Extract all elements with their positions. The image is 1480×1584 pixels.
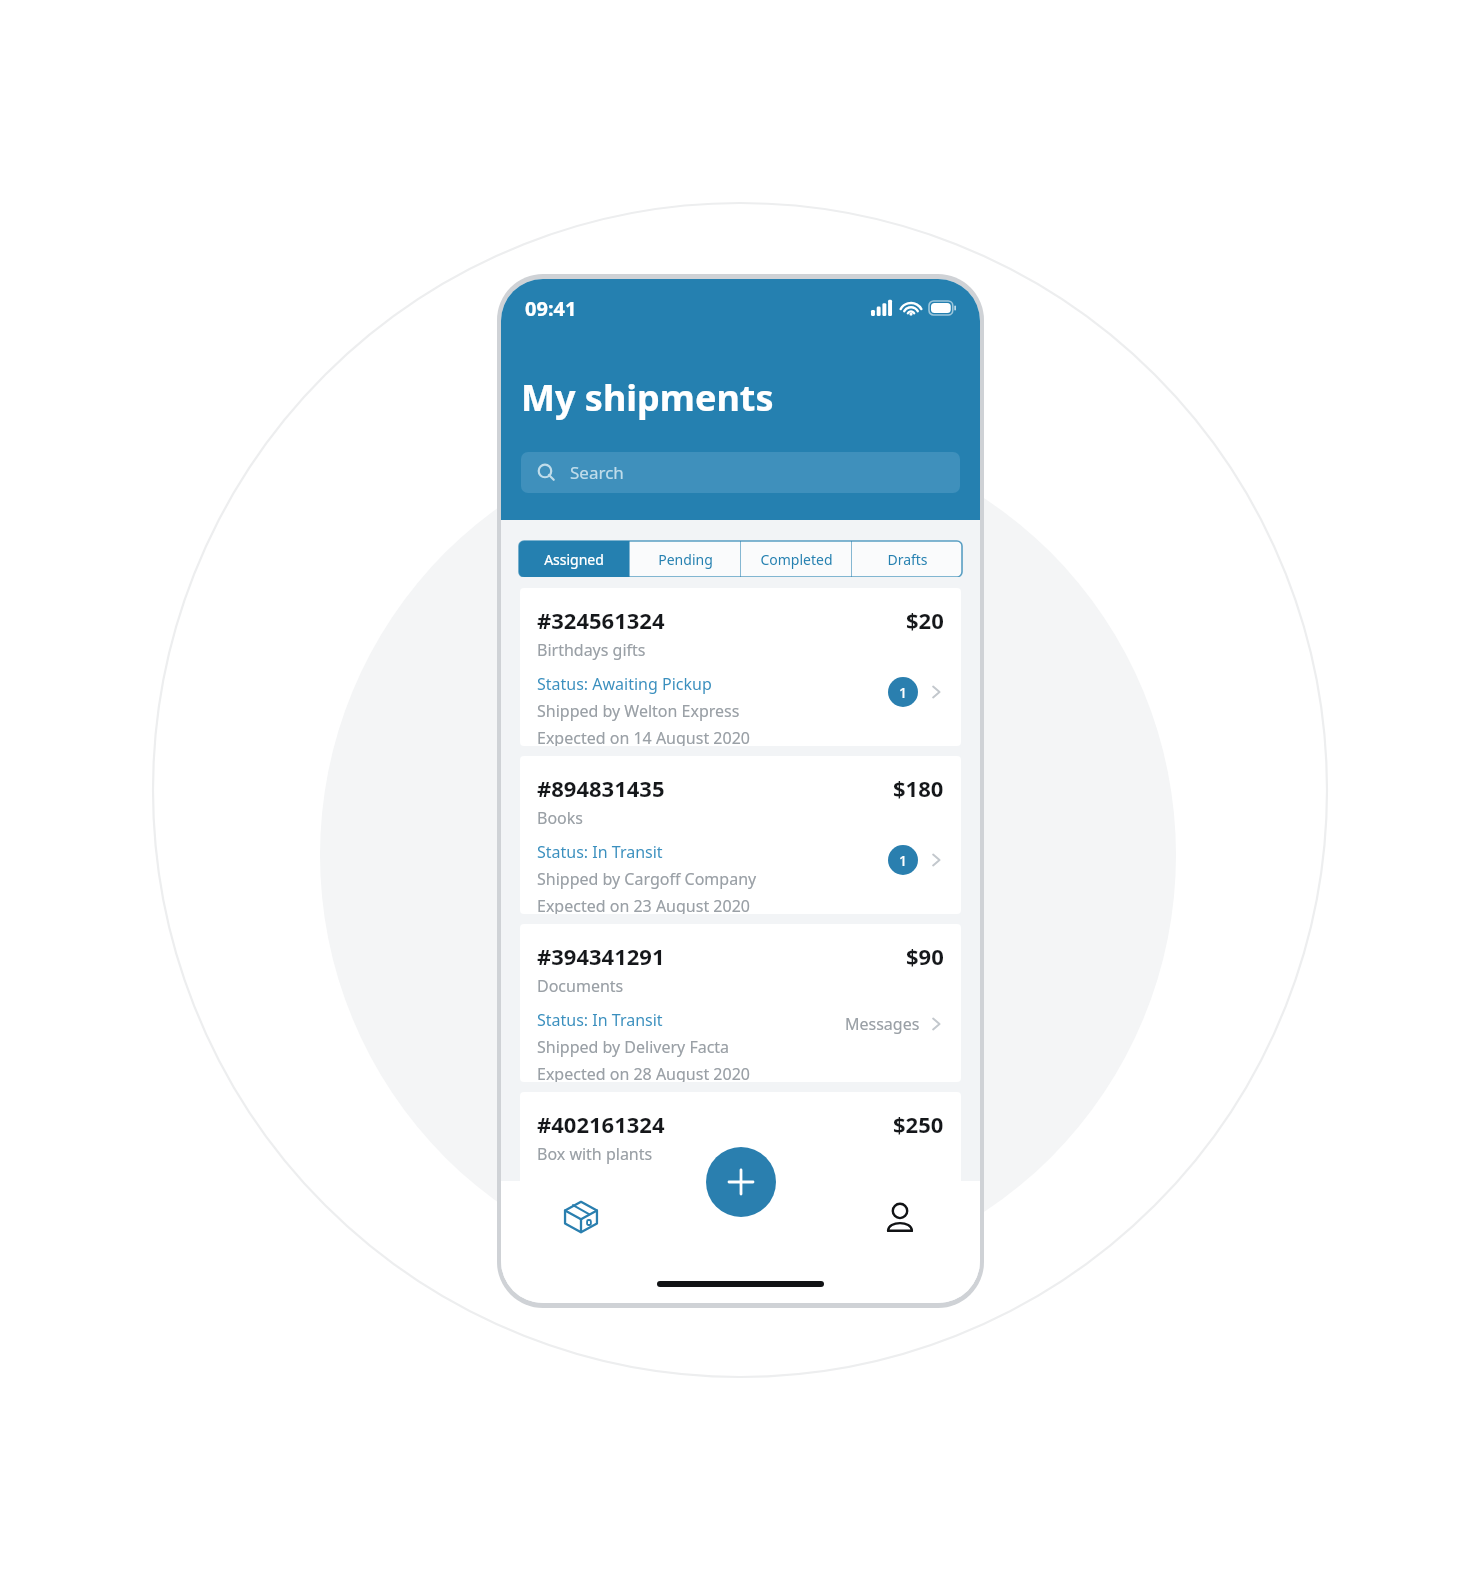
button[interactable]: Assigned [519, 541, 629, 577]
staticText: #894831435 [537, 773, 665, 803]
staticText: Birthdays gifts [537, 639, 646, 661]
staticText: Shipped by Delivery Facta [537, 1036, 730, 1058]
button[interactable]: Add shipment [706, 1147, 776, 1217]
staticText: Shipped by Cargoff Company [537, 868, 757, 890]
staticText: $250 [893, 1109, 944, 1139]
button[interactable]: #894831435 [520, 756, 961, 914]
staticText: My shipments [521, 373, 774, 422]
button[interactable]: #394341291 [520, 924, 961, 1082]
staticText: Expected on 23 August 2020 [537, 895, 750, 914]
staticText: Drafts [887, 550, 928, 569]
staticText: Shipped by Welton Express [537, 700, 740, 722]
staticText: #394341291 [537, 941, 665, 971]
staticText: $20 [906, 605, 944, 635]
staticText: 09:41 [525, 295, 577, 322]
staticText: Search [570, 461, 624, 484]
button[interactable]: Drafts [852, 541, 962, 577]
staticText: $90 [906, 941, 944, 971]
button[interactable]: 1 [888, 677, 944, 707]
staticText: 1 [899, 683, 908, 702]
staticText: 1 [899, 851, 908, 870]
staticText: Assigned [544, 550, 604, 569]
staticText: Expected on 30 August 2020 [537, 1231, 750, 1250]
staticText: 1 [899, 1187, 908, 1206]
button[interactable]: Messages [845, 1013, 944, 1035]
staticText: Status: In Transit [537, 841, 663, 863]
button[interactable]: #402161324 [520, 1092, 961, 1250]
staticText: Box with plants [537, 1143, 653, 1165]
staticText: Status: In Transit [537, 1009, 663, 1031]
staticText: #402161324 [537, 1109, 665, 1139]
button[interactable]: Shipments [501, 1181, 660, 1253]
staticText: Completed [760, 550, 833, 569]
button[interactable]: Pending [630, 541, 740, 577]
button[interactable]: Profile [820, 1181, 980, 1253]
button[interactable]: 1 [888, 1181, 944, 1211]
staticText: Shipped by Welton Express [537, 1204, 740, 1226]
staticText: Expected on 14 August 2020 [537, 727, 750, 746]
staticText: Status: Awaiting Pickup [537, 673, 712, 695]
staticText: Expected on 28 August 2020 [537, 1063, 750, 1082]
button[interactable]: Completed [741, 541, 851, 577]
staticText: Messages [845, 1013, 920, 1035]
staticText: #324561324 [537, 605, 665, 635]
staticText: Pending [658, 550, 713, 569]
staticText: Documents [537, 975, 624, 997]
staticText: Books [537, 807, 583, 829]
button[interactable]: #324561324 [520, 588, 961, 746]
staticText: $180 [893, 773, 944, 803]
button[interactable]: 1 [888, 845, 944, 875]
button[interactable]: Search [521, 452, 960, 493]
